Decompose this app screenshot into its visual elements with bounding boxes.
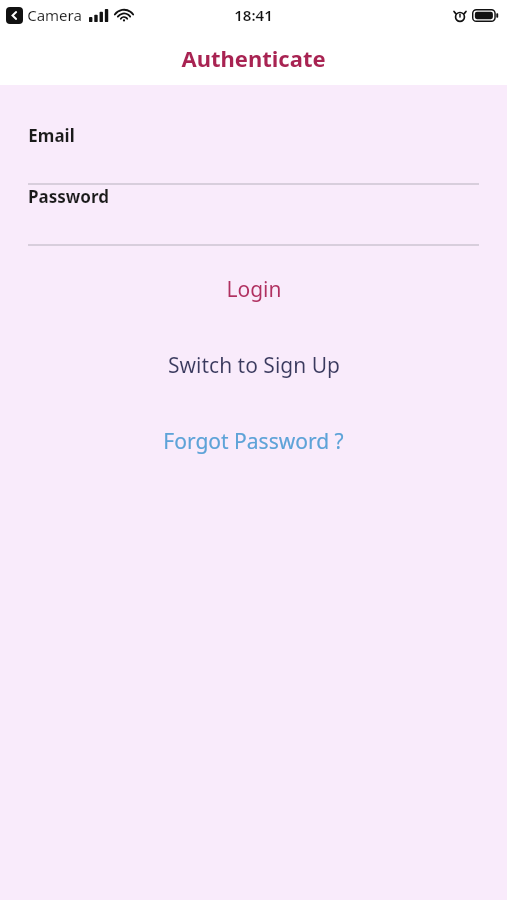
staticText: Password bbox=[28, 185, 109, 208]
staticText: Forgot Password ? bbox=[163, 427, 344, 456]
staticText: Camera bbox=[27, 5, 82, 25]
button[interactable]: Email bbox=[0, 124, 507, 185]
button[interactable]: Switch to Sign Up bbox=[0, 347, 507, 384]
staticText: Authenticate bbox=[181, 43, 326, 73]
button[interactable]: Password bbox=[0, 185, 507, 246]
button[interactable]: Login bbox=[0, 271, 507, 308]
staticText: Login bbox=[226, 275, 282, 304]
staticText: Switch to Sign Up bbox=[168, 351, 340, 380]
staticText: 18:41 bbox=[234, 5, 273, 25]
button[interactable]: Forgot Password ? bbox=[0, 423, 507, 460]
staticText: Email bbox=[28, 124, 75, 147]
